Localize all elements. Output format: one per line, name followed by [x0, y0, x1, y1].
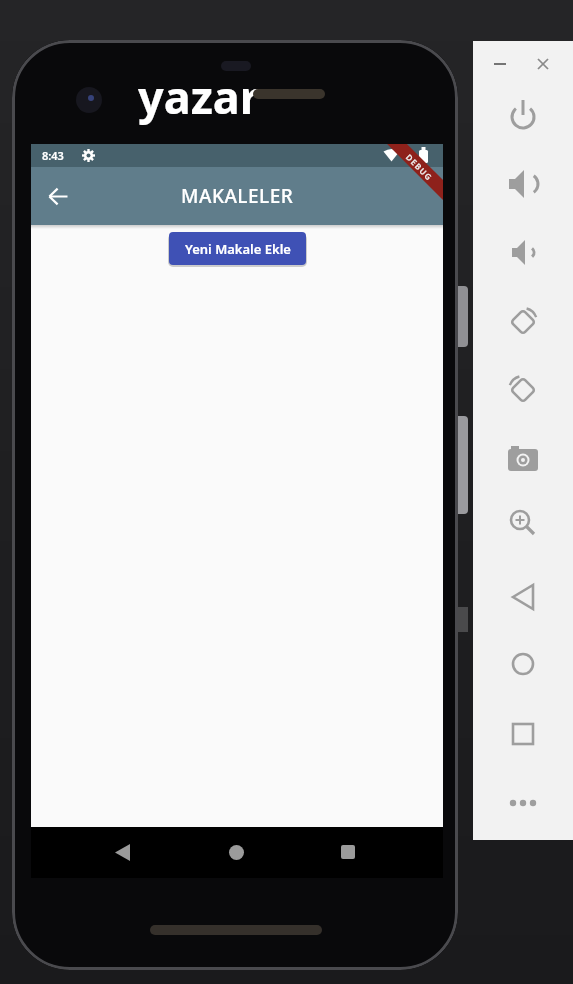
button[interactable]: [505, 234, 541, 270]
button[interactable]: Yeni Makale Ekle: [169, 232, 306, 265]
staticText: 8:43: [42, 148, 64, 163]
button[interactable]: [505, 97, 541, 133]
button[interactable]: [505, 438, 541, 474]
staticText: yazar: [138, 66, 260, 127]
button[interactable]: [505, 302, 541, 338]
button[interactable]: [223, 839, 249, 865]
button[interactable]: [491, 55, 509, 73]
button[interactable]: [44, 182, 72, 210]
button[interactable]: [505, 370, 541, 406]
button[interactable]: [534, 55, 552, 73]
staticText: DEBUG: [404, 151, 435, 183]
staticText: Yeni Makale Ekle: [185, 240, 291, 258]
button[interactable]: [335, 839, 361, 865]
button[interactable]: [505, 646, 541, 682]
button[interactable]: [505, 579, 541, 615]
button[interactable]: [505, 716, 541, 752]
button[interactable]: [505, 785, 541, 821]
button[interactable]: [109, 839, 135, 865]
button[interactable]: [505, 505, 541, 541]
button[interactable]: [505, 166, 541, 202]
staticText: MAKALELER: [181, 183, 294, 209]
